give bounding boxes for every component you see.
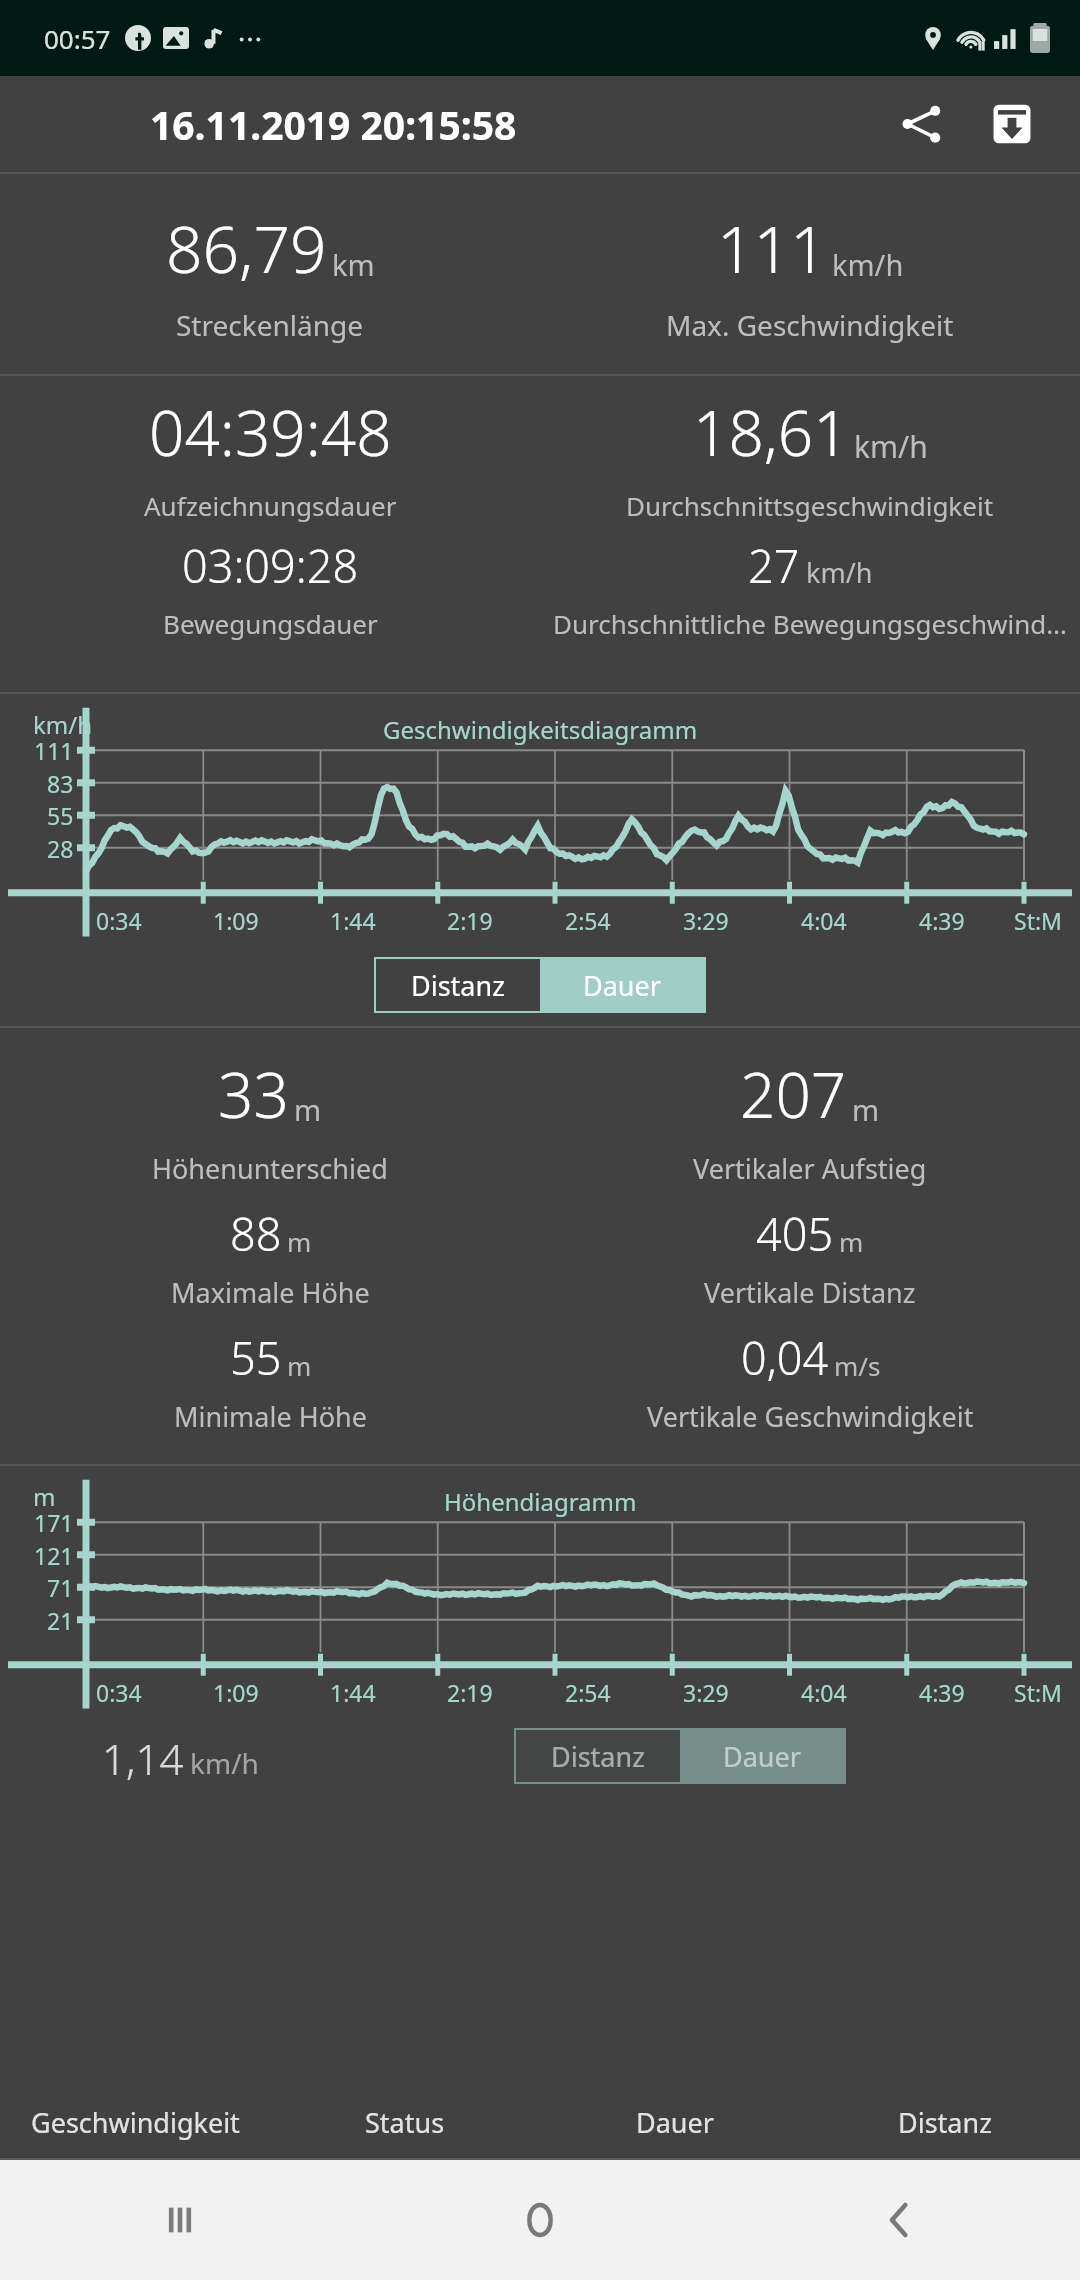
staticText: Streckenlänge [176, 306, 364, 344]
staticText: 3:29 [683, 1677, 729, 1708]
staticText: Dauer [583, 967, 661, 1004]
button[interactable]: Status [270, 2098, 540, 2146]
staticText: 111 [717, 205, 827, 292]
staticText: 0:34 [96, 1677, 142, 1708]
staticText: 2:54 [565, 905, 611, 936]
staticText: 2:19 [447, 905, 493, 936]
staticText: 16.11.2019 20:15:58 [150, 98, 517, 151]
staticText: m [287, 1224, 312, 1259]
staticText: 18,61 [693, 390, 849, 474]
staticText: Durchschnittliche Bewegungsgeschwind… [553, 606, 1067, 641]
staticText: 27 [748, 535, 800, 596]
staticText: 00:57 [44, 21, 111, 56]
staticText: 0,04 [741, 1327, 829, 1388]
staticText: St:M [1014, 1677, 1062, 1708]
staticText: m [839, 1224, 864, 1259]
staticText: 207 [740, 1052, 847, 1136]
staticText: Maximale Höhe [171, 1274, 370, 1311]
staticText: 88 [230, 1203, 282, 1264]
staticText: km/h [832, 245, 904, 284]
staticText: 1,14 [102, 1730, 184, 1787]
staticText: 171 [34, 1507, 74, 1538]
staticText: m [33, 1480, 56, 1513]
staticText: Dauer [636, 2104, 714, 2141]
staticText: 83 [47, 768, 74, 799]
staticText: Vertikaler Aufstieg [693, 1150, 927, 1187]
staticText: 1:09 [213, 905, 259, 936]
button[interactable]: Back [720, 2160, 1080, 2280]
staticText: m [294, 1090, 322, 1129]
staticText: 4:04 [801, 905, 847, 936]
staticText: Durchschnittsgeschwindigkeit [626, 488, 994, 523]
staticText: km/h [190, 1744, 259, 1782]
staticText: km/h [854, 426, 928, 467]
staticText: 4:04 [801, 1677, 847, 1708]
staticText: Geschwindigkeit [31, 2104, 240, 2141]
staticText: Dauer [723, 1738, 801, 1775]
staticText: 55 [230, 1327, 282, 1388]
staticText: km/h [806, 554, 873, 591]
staticText: 2:19 [447, 1677, 493, 1708]
button[interactable]: Dauer [540, 959, 704, 1011]
staticText: Distanz [411, 967, 505, 1004]
staticText: 04:39:48 [149, 390, 392, 474]
staticText: km [332, 245, 375, 284]
button[interactable]: Dauer [540, 2098, 810, 2146]
staticText: 3:29 [683, 905, 729, 936]
button[interactable]: 86,79 [0, 205, 540, 344]
button[interactable]: Distanz [810, 2098, 1080, 2146]
staticText: km/h [33, 708, 93, 741]
staticText: 28 [47, 833, 74, 864]
staticText: 86,79 [166, 205, 327, 292]
staticText: Vertikale Geschwindigkeit [647, 1398, 974, 1435]
button[interactable]: Dauer [680, 1730, 844, 1782]
staticText: 03:09:28 [182, 535, 359, 596]
staticText: St:M [1014, 905, 1062, 936]
staticText: 4:39 [919, 905, 965, 936]
button[interactable]: Home [360, 2160, 720, 2280]
button[interactable]: 111 [540, 205, 1080, 344]
staticText: Bewegungsdauer [163, 606, 378, 641]
staticText: Höhendiagramm [444, 1485, 637, 1518]
button[interactable]: Distanz [376, 959, 540, 1011]
button[interactable]: Distanz [516, 1730, 680, 1782]
staticText: 1:44 [330, 1677, 376, 1708]
staticText: 4:39 [919, 1677, 965, 1708]
staticText: Aufzeichnungsdauer [144, 488, 397, 523]
staticText: 121 [34, 1540, 74, 1571]
staticText: Minimale Höhe [174, 1398, 367, 1435]
staticText: m [852, 1090, 880, 1129]
staticText: 2:54 [565, 1677, 611, 1708]
staticText: 21 [47, 1605, 74, 1636]
staticText: 71 [47, 1572, 74, 1603]
button[interactable]: Geschwindigkeit [0, 2098, 270, 2146]
staticText: Vertikale Distanz [704, 1274, 916, 1311]
staticText: Distanz [898, 2104, 992, 2141]
staticText: 0:34 [96, 905, 142, 936]
staticText: 1:09 [213, 1677, 259, 1708]
staticText: Höhenunterschied [152, 1150, 388, 1187]
staticText: Geschwindigkeitsdiagramm [383, 713, 698, 746]
staticText: 33 [218, 1052, 289, 1136]
staticText: Status [365, 2104, 445, 2141]
staticText: m [287, 1348, 312, 1383]
staticText: 55 [47, 800, 74, 831]
staticText: 1:44 [330, 905, 376, 936]
button[interactable]: Recent apps [0, 2160, 360, 2280]
staticText: Max. Geschwindigkeit [666, 306, 954, 344]
staticText: m/s [834, 1348, 881, 1383]
button[interactable]: Export [970, 82, 1054, 166]
staticText: 111 [34, 735, 74, 766]
staticText: 405 [756, 1203, 834, 1264]
button[interactable]: Share [880, 82, 964, 166]
staticText: Distanz [551, 1738, 645, 1775]
